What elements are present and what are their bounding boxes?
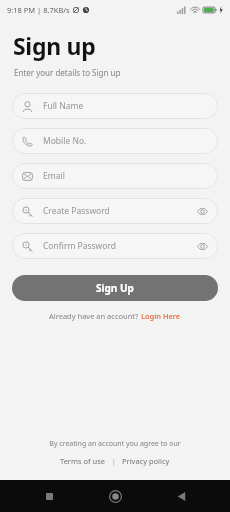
staticText: By creating an account you agree to our (0, 439, 230, 449)
button[interactable]: Show password (195, 204, 209, 218)
button[interactable]: Sign Up (12, 275, 218, 301)
button[interactable]: Login Here (141, 311, 181, 321)
staticText: Full Name (43, 100, 209, 112)
staticText: Email (43, 170, 209, 182)
button[interactable]: Mobile No. (12, 128, 218, 154)
staticText: 9:18 PM | 8.7KB/s (7, 5, 70, 15)
button[interactable]: Back (164, 480, 198, 512)
staticText: Sign Up (96, 281, 134, 295)
staticText: Already have an account? (49, 311, 141, 321)
button[interactable]: Create Password (12, 198, 218, 224)
button[interactable]: Full Name (12, 93, 218, 119)
staticText: Sign up (13, 30, 96, 61)
staticText: Login Here (141, 311, 181, 321)
button[interactable]: Email (12, 163, 218, 189)
staticText: Mobile No. (43, 135, 209, 147)
staticText: Privacy policy (122, 456, 170, 466)
staticText: Create Password (43, 205, 195, 217)
button[interactable]: Show password (195, 239, 209, 253)
button[interactable]: Privacy policy (122, 456, 170, 466)
staticText: Confirm Password (43, 240, 195, 252)
button[interactable]: Home (98, 480, 132, 512)
button[interactable]: Confirm Password (12, 233, 218, 259)
staticText: Terms of use (60, 456, 106, 466)
button[interactable]: Recent apps (32, 480, 66, 512)
staticText: | (106, 456, 122, 466)
staticText: Enter your details to Sign up (14, 67, 121, 78)
button[interactable]: Terms of use (60, 456, 106, 466)
